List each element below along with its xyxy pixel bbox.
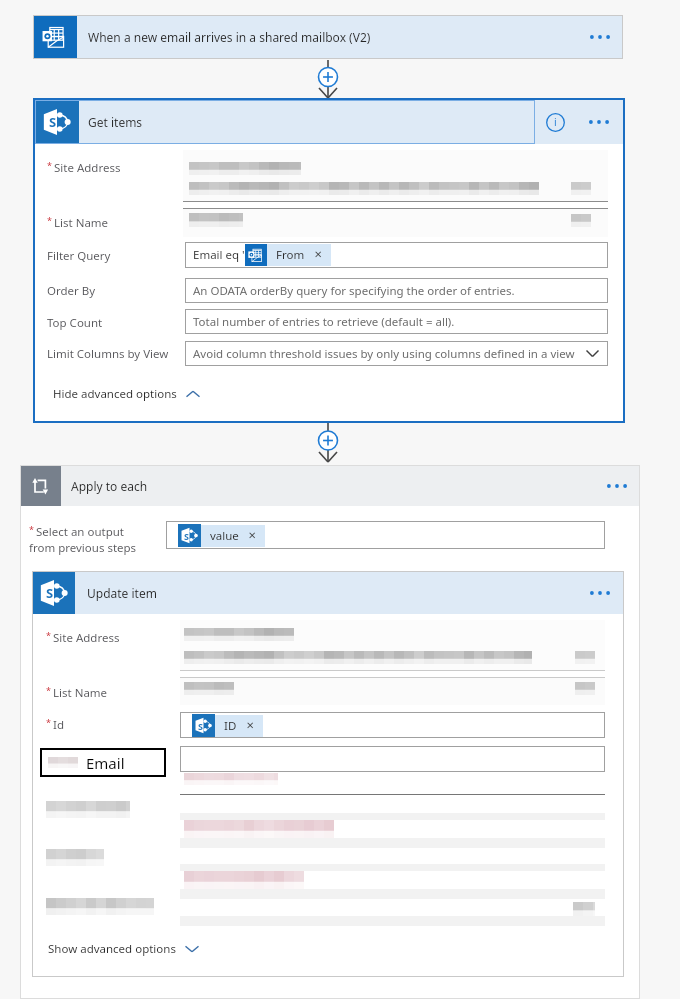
- staticText: *: [46, 629, 51, 641]
- staticText: ✕: [314, 249, 323, 261]
- staticText: Email: [86, 753, 125, 773]
- staticText: List Name: [53, 685, 108, 701]
- staticText: S: [184, 530, 189, 542]
- staticText: value: [210, 528, 239, 544]
- button[interactable]: Total number of entries to retrieve (def…: [185, 309, 608, 334]
- staticText: Get items: [88, 114, 143, 130]
- button[interactable]: Hide advanced options: [49, 382, 204, 406]
- button[interactable]: Email eq ': [185, 242, 608, 268]
- staticText: i: [554, 115, 557, 129]
- staticText: *: [47, 214, 52, 226]
- staticText: Show advanced options: [48, 941, 176, 957]
- button[interactable]: More options: [600, 472, 634, 500]
- staticText: When a new email arrives in a shared mai…: [88, 29, 371, 45]
- staticText: From: [276, 247, 305, 263]
- staticText: S: [198, 720, 203, 732]
- staticText: Site Address: [53, 630, 120, 646]
- staticText: *: [46, 716, 51, 728]
- staticText: *: [47, 159, 52, 171]
- staticText: Email eq ': [193, 247, 245, 263]
- button[interactable]: When a new email arrives in a shared mai…: [33, 15, 623, 59]
- staticText: Select an output: [36, 524, 125, 540]
- staticText: Site Address: [54, 160, 121, 176]
- staticText: An ODATA orderBy query for specifying th…: [193, 283, 515, 299]
- staticText: Top Count: [47, 315, 103, 331]
- button[interactable]: S: [166, 521, 605, 549]
- staticText: *: [29, 523, 34, 535]
- staticText: ✕: [246, 720, 255, 732]
- button[interactable]: Show advanced options: [44, 937, 203, 961]
- staticText: ✕: [248, 530, 257, 542]
- button[interactable]: Apply to each: [20, 465, 640, 506]
- staticText: from previous steps: [29, 540, 137, 556]
- staticText: Update item: [87, 585, 157, 601]
- button[interactable]: Avoid column threshold issues by only us…: [185, 341, 608, 366]
- button[interactable]: Info: [544, 111, 566, 133]
- staticText: Limit Columns by View: [47, 346, 169, 362]
- staticText: Id: [53, 717, 64, 733]
- staticText: ID: [224, 718, 237, 734]
- button[interactable]: More options: [583, 579, 617, 607]
- button[interactable]: S: [32, 571, 624, 614]
- staticText: Hide advanced options: [53, 386, 177, 402]
- button[interactable]: [180, 746, 605, 772]
- staticText: Filter Query: [47, 248, 111, 264]
- staticText: S: [46, 584, 54, 602]
- staticText: Apply to each: [71, 478, 148, 494]
- staticText: Avoid column threshold issues by only us…: [193, 346, 575, 362]
- button[interactable]: More options: [583, 23, 617, 51]
- button[interactable]: S: [180, 712, 605, 738]
- staticText: S: [49, 113, 57, 131]
- staticText: *: [46, 684, 51, 696]
- button[interactable]: An ODATA orderBy query for specifying th…: [185, 278, 608, 303]
- staticText: Order By: [47, 283, 96, 299]
- button[interactable]: S: [35, 100, 535, 144]
- staticText: Total number of entries to retrieve (def…: [193, 314, 455, 330]
- staticText: List Name: [54, 215, 109, 231]
- button[interactable]: More options: [582, 108, 616, 136]
